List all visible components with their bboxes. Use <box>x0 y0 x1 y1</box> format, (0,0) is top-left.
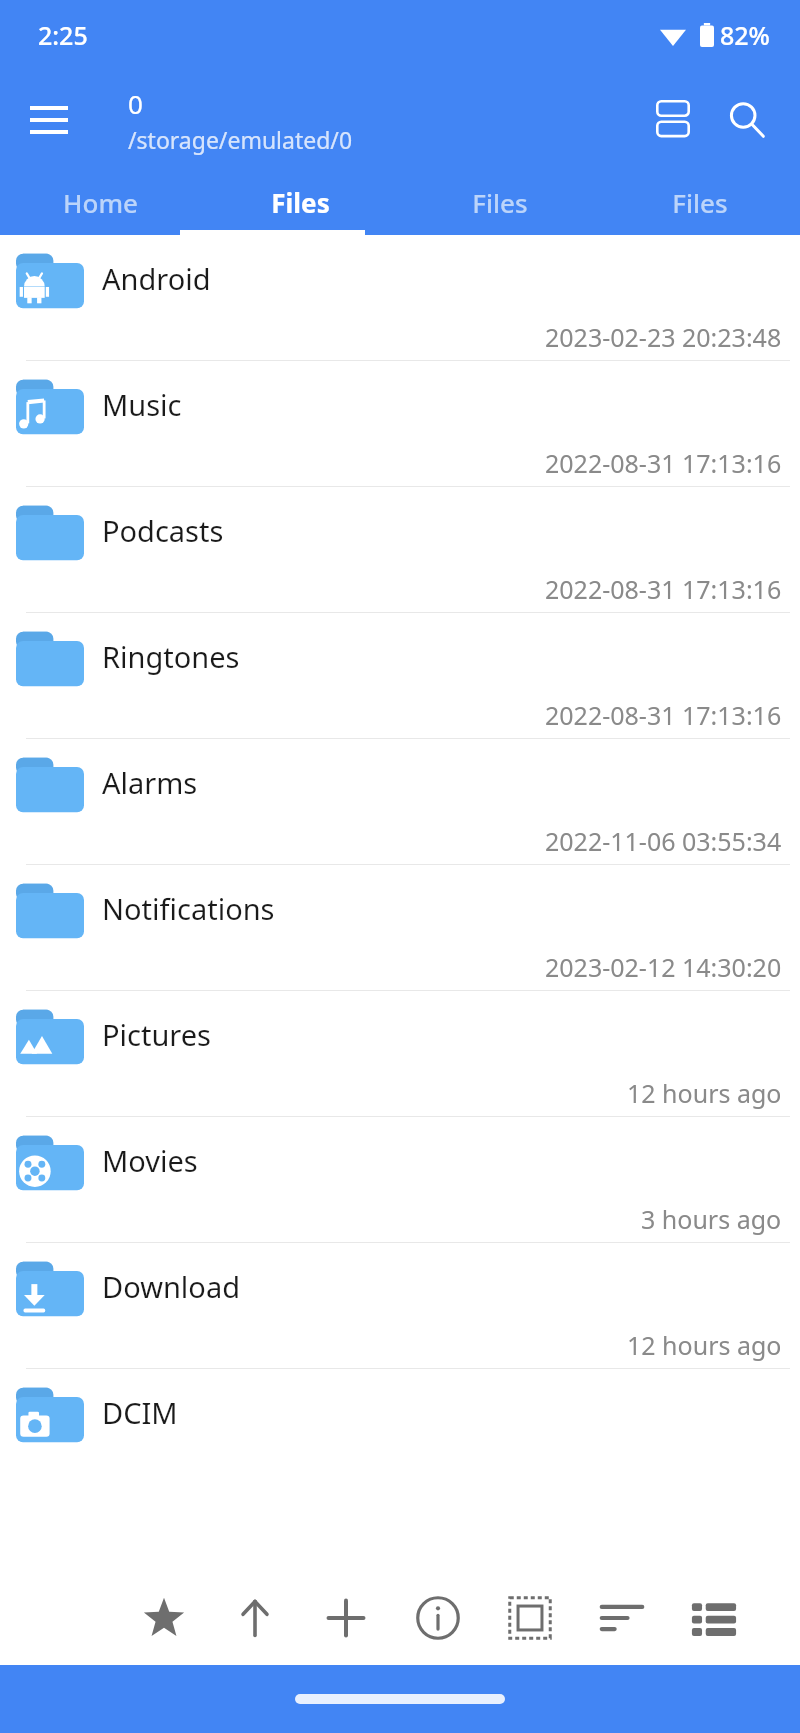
button[interactable]: Select all <box>484 1570 576 1665</box>
staticText: DCIM <box>102 1393 178 1432</box>
staticText: Android <box>102 259 211 298</box>
staticText: 2022-11-06 03:55:34 <box>545 824 782 858</box>
button[interactable]: Android <box>0 235 800 361</box>
staticText: 0 <box>128 86 143 121</box>
button[interactable]: Alarms <box>0 739 800 865</box>
staticText: Download <box>102 1267 240 1306</box>
button[interactable]: Files <box>200 170 400 235</box>
button[interactable]: Favorites <box>118 1570 209 1665</box>
button[interactable]: Home <box>0 170 200 235</box>
staticText: Ringtones <box>102 637 240 676</box>
staticText: Notifications <box>102 889 275 928</box>
button[interactable]: Add <box>300 1570 392 1665</box>
button[interactable]: Go up <box>209 1570 300 1665</box>
staticText: Pictures <box>102 1015 211 1054</box>
button[interactable]: Info <box>392 1570 484 1665</box>
staticText: 2023-02-12 14:30:20 <box>545 950 782 984</box>
button[interactable]: Music <box>0 361 800 487</box>
button[interactable]: Open navigation menu <box>14 85 84 155</box>
staticText: 2:25 <box>38 18 88 52</box>
staticText: Files <box>271 185 330 220</box>
button[interactable]: Search <box>710 83 784 157</box>
staticText: Files <box>672 185 728 220</box>
staticText: 2022-08-31 17:13:16 <box>545 698 782 732</box>
staticText: Alarms <box>102 763 198 802</box>
staticText: 12 hours ago <box>627 1076 782 1110</box>
button[interactable]: View mode <box>668 1570 760 1665</box>
staticText: Music <box>102 385 182 424</box>
staticText: Home <box>63 185 138 220</box>
staticText: /storage/emulated/0 <box>128 124 353 155</box>
button[interactable]: Movies <box>0 1117 800 1243</box>
staticText: Podcasts <box>102 511 224 550</box>
staticText: 3 hours ago <box>641 1202 782 1236</box>
button[interactable]: Podcasts <box>0 487 800 613</box>
staticText: 2022-08-31 17:13:16 <box>545 572 782 606</box>
staticText: Movies <box>102 1141 198 1180</box>
button[interactable]: Ringtones <box>0 613 800 739</box>
button[interactable]: Notifications <box>0 865 800 991</box>
button[interactable]: Download <box>0 1243 800 1369</box>
staticText: 2022-08-31 17:13:16 <box>545 446 782 480</box>
staticText: 12 hours ago <box>627 1328 782 1362</box>
staticText: 82% <box>720 18 770 52</box>
staticText: Files <box>472 185 528 220</box>
button[interactable]: Pictures <box>0 991 800 1117</box>
button[interactable]: Toggle split view <box>636 83 710 157</box>
button[interactable]: DCIM <box>0 1369 800 1495</box>
staticText: 2023-02-23 20:23:48 <box>545 320 782 354</box>
button[interactable]: Files <box>400 170 600 235</box>
button[interactable]: Sort <box>576 1570 668 1665</box>
button[interactable]: Files <box>600 170 800 235</box>
